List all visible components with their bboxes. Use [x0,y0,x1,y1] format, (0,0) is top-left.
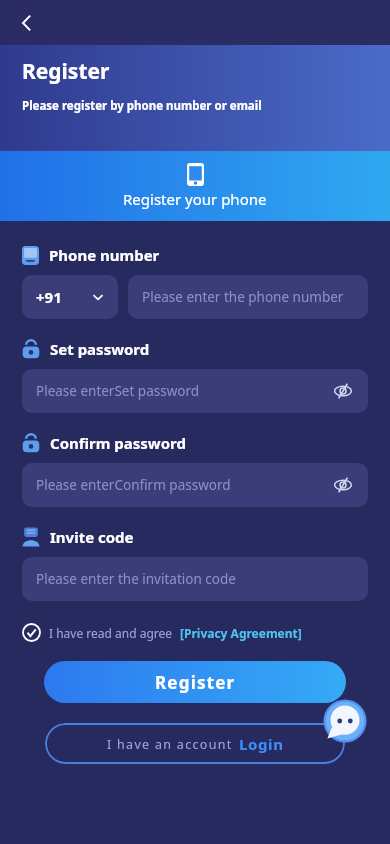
staticText: Confirm password [50,433,186,453]
button[interactable]: Show password [330,378,356,404]
staticText: Please register by phone number or email [22,98,262,114]
staticText: [Privacy Agreement] [180,625,302,641]
staticText: +91 [36,287,62,307]
button[interactable]: Back [8,4,46,42]
button[interactable]: I have read and agree [22,623,302,642]
staticText: Register your phone [123,189,267,209]
staticText: Please enterConfirm password [36,476,330,494]
button[interactable]: Please enterConfirm password [22,463,368,507]
staticText: I have an account [107,736,233,753]
staticText: Register [155,671,236,694]
staticText: Set password [50,339,150,359]
staticText: Please enter the phone number [142,288,344,306]
staticText: Login [239,734,284,754]
button[interactable]: I have an account [45,723,345,764]
button[interactable]: Register [44,661,346,703]
button[interactable]: Please enter the invitation code [22,557,368,601]
staticText: Invite code [50,527,134,547]
button[interactable]: +91 [22,275,118,319]
button[interactable]: Please enterSet password [22,369,368,413]
button[interactable]: Customer service chat [323,699,367,743]
staticText: I have read and agree [49,625,173,641]
staticText: Phone number [49,245,160,265]
button[interactable]: Show password [330,472,356,498]
button[interactable]: Please enter the phone number [128,275,368,319]
button[interactable]: Register your phone [0,151,390,221]
staticText: Register [22,57,110,86]
staticText: Please enter the invitation code [36,570,236,588]
staticText: Please enterSet password [36,382,330,400]
